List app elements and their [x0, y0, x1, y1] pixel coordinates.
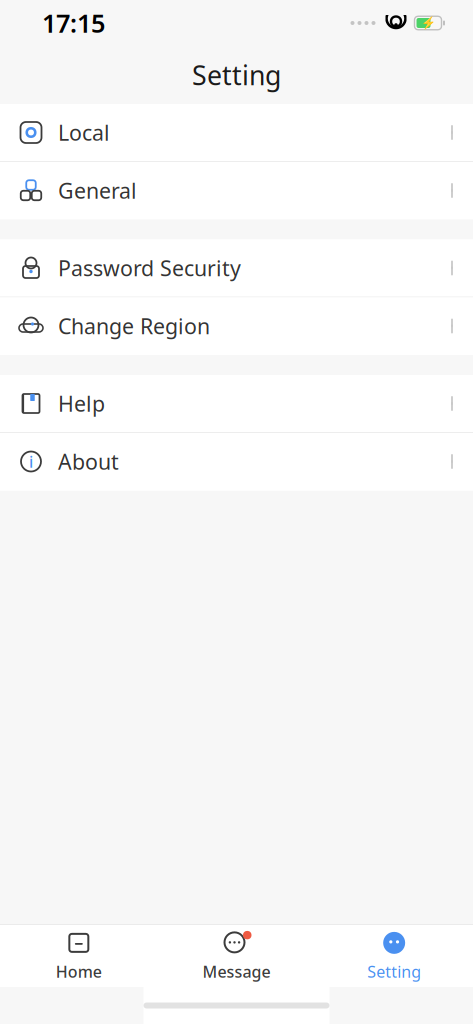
button[interactable]: Home — [0, 925, 158, 987]
staticText: Home — [56, 961, 102, 982]
button[interactable]: Help — [0, 375, 473, 433]
staticText: 17:15 — [42, 6, 105, 40]
button[interactable]: Message — [158, 925, 315, 987]
button[interactable]: Setting — [315, 925, 473, 987]
staticText: Setting — [192, 57, 281, 93]
button[interactable]: Local — [0, 104, 473, 162]
staticText: Setting — [367, 961, 421, 982]
button[interactable]: Password Security — [0, 239, 473, 297]
staticText: Password Security — [58, 254, 241, 282]
staticText: Help — [58, 389, 105, 418]
button[interactable]: Change Region — [0, 297, 473, 355]
staticText: ⚡ — [420, 16, 435, 30]
staticText: Message — [202, 961, 270, 982]
staticText: General — [58, 176, 137, 205]
staticText: i — [29, 451, 33, 472]
staticText: Change Region — [58, 312, 210, 340]
staticText: Local — [58, 118, 110, 147]
button[interactable]: i — [0, 433, 473, 490]
button[interactable]: General — [0, 162, 473, 219]
staticText: About — [58, 447, 119, 476]
